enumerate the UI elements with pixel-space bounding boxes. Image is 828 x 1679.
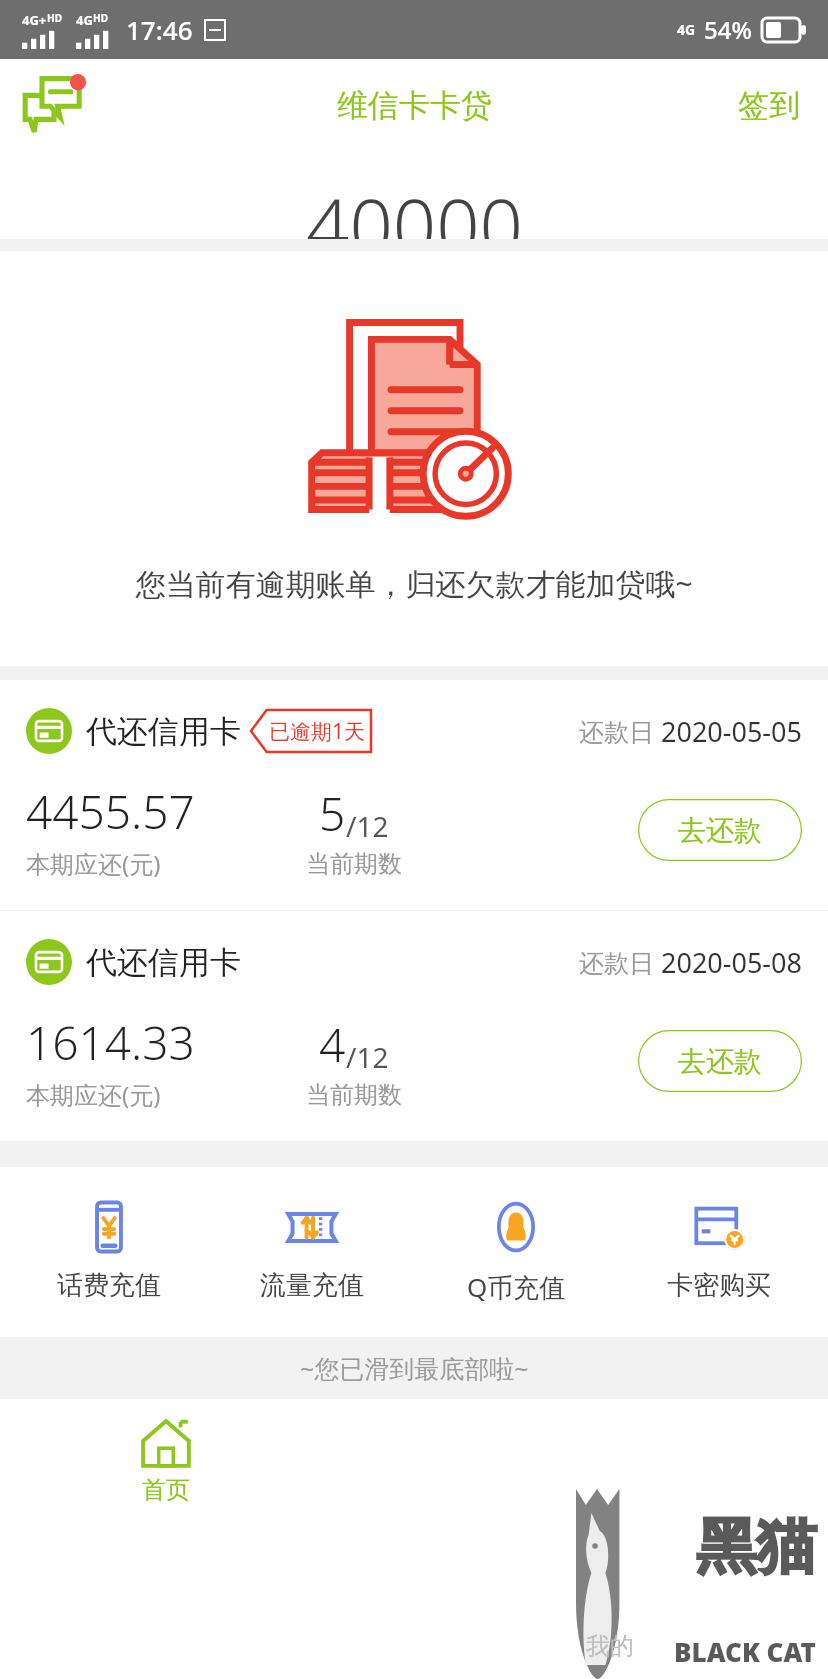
staticText: 54% <box>704 13 752 46</box>
staticText: HD <box>93 11 108 25</box>
staticText: 我的 <box>586 1631 634 1661</box>
staticText: 1614.33 <box>26 1011 195 1074</box>
button[interactable]: 去还款 <box>638 799 802 861</box>
button[interactable]: Messages <box>18 69 90 141</box>
staticText: /12 <box>346 1038 389 1076</box>
staticText: 4G+ <box>22 11 47 29</box>
staticText: BLACK CAT <box>674 1634 816 1669</box>
staticText: 本期应还(元) <box>26 1078 161 1111</box>
staticText: 卡密购买 <box>667 1269 771 1302</box>
staticText: 话费充值 <box>57 1269 161 1302</box>
staticText: 去还款 <box>678 1044 762 1079</box>
staticText: 黑猫 <box>696 1509 816 1585</box>
staticText: 2020-05-08 <box>661 944 802 981</box>
staticText: 当前期数 <box>306 849 402 879</box>
button[interactable]: 代还信用卡 <box>0 911 828 1141</box>
staticText: 4 <box>319 1013 346 1076</box>
staticText: 4G <box>76 11 93 29</box>
staticText: 5 <box>319 782 346 845</box>
staticText: HD <box>47 11 62 25</box>
button[interactable]: 话费充值 <box>14 1193 204 1308</box>
button[interactable]: 签到 <box>730 76 808 135</box>
staticText: 4455.57 <box>26 780 195 843</box>
staticText: 代还信用卡 <box>86 943 241 982</box>
button[interactable]: Q币充值 <box>421 1193 611 1311</box>
staticText: 本期应还(元) <box>26 847 161 880</box>
staticText: ~您已滑到最底部啦~ <box>300 1351 529 1385</box>
staticText: 去还款 <box>678 813 762 848</box>
button[interactable]: 首页 <box>120 1413 212 1509</box>
staticText: 2020-05-05 <box>661 713 802 750</box>
staticText: 签到 <box>738 86 800 125</box>
button[interactable]: 流量充值 <box>217 1193 407 1308</box>
staticText: 代还信用卡 <box>86 712 241 751</box>
staticText: 17:46 <box>126 12 193 47</box>
staticText: 4G <box>677 20 696 39</box>
button[interactable]: 卡密购买 <box>624 1193 814 1308</box>
staticText: 维信卡卡贷 <box>337 86 492 125</box>
button[interactable]: 代还信用卡 <box>0 680 828 910</box>
staticText: 您当前有逾期账单，归还欠款才能加贷哦~ <box>135 563 693 604</box>
staticText: 还款日 <box>579 714 661 748</box>
button[interactable]: 去还款 <box>638 1030 802 1092</box>
staticText: /12 <box>346 807 389 845</box>
staticText: Q币充值 <box>467 1269 566 1305</box>
staticText: 40000 <box>306 173 523 261</box>
staticText: 首页 <box>142 1475 190 1505</box>
staticText: 流量充值 <box>260 1269 364 1302</box>
staticText: 已逾期1天 <box>269 717 366 746</box>
staticText: 当前期数 <box>306 1080 402 1110</box>
staticText: 还款日 <box>579 945 661 979</box>
